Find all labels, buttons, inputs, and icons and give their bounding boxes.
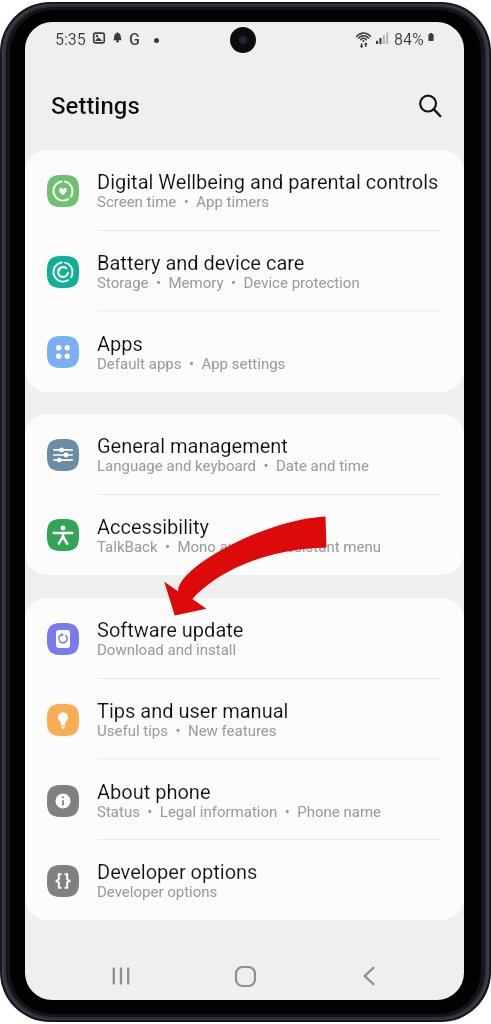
staticText: 5:35 [55,30,86,49]
staticText: Software update [97,618,244,641]
button[interactable]: Home [219,950,271,1000]
button[interactable]: About phone [25,760,464,841]
staticText: General management [97,434,288,457]
button[interactable]: Tips and user manual [25,679,464,760]
button[interactable]: Accessibility [25,495,464,575]
staticText: Tips and user manual [97,699,289,722]
button[interactable]: Apps [25,312,464,392]
button[interactable]: Battery and device care [25,231,464,312]
staticText: Battery and device care [97,251,305,274]
staticText: Digital Wellbeing and parental controls [97,170,439,193]
button[interactable]: Back [343,950,395,1000]
button[interactable]: Digital Wellbeing and parental controls [25,150,464,231]
staticText: Default apps • App settings [97,355,286,373]
button[interactable]: Software update [25,598,464,679]
staticText: TalkBack • Mono audio • Assistant menu [97,538,381,556]
staticText: Developer options [97,883,218,901]
staticText: Developer options [97,860,258,883]
staticText: Status • Legal information • Phone name [97,803,382,821]
staticText: Language and keyboard • Date and time [97,457,369,475]
button[interactable]: Search [409,85,451,127]
staticText: Storage • Memory • Device protection [97,274,360,292]
staticText: Apps [97,332,143,355]
staticText: Download and install [97,641,237,659]
staticText: 84% [394,30,424,49]
staticText: G [129,30,140,49]
button[interactable]: General management [25,414,464,495]
button[interactable]: Developer options [25,841,464,920]
staticText: Screen time • App timers [97,193,270,211]
staticText: About phone [97,780,211,803]
staticText: Settings [51,92,140,120]
staticText: Useful tips • New features [97,722,277,740]
button[interactable]: Recent apps [95,950,147,1000]
staticText: Accessibility [97,515,209,538]
